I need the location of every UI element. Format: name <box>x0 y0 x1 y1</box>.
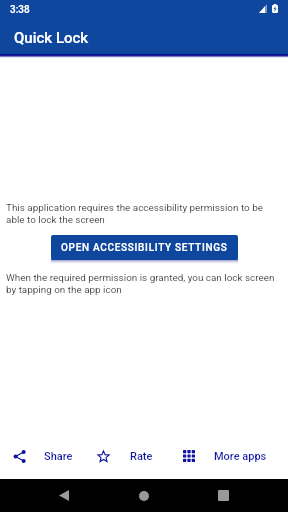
staticText: When the required permission is granted,… <box>6 272 282 296</box>
staticText: OPEN ACCESSIBILITY SETTINGS <box>61 242 228 254</box>
button[interactable]: More apps <box>178 438 273 474</box>
button[interactable]: Rate <box>92 438 159 474</box>
staticText: Share <box>44 450 73 463</box>
other: Home <box>139 491 149 501</box>
other: Back <box>59 490 69 501</box>
button[interactable]: OPEN ACCESSIBILITY SETTINGS <box>51 235 238 260</box>
other: More apps <box>183 450 195 462</box>
button[interactable]: Share <box>8 438 79 474</box>
staticText: More apps <box>214 450 267 463</box>
other: Recents <box>218 490 229 501</box>
other: Share <box>13 450 26 463</box>
staticText: Quick Lock <box>14 29 89 47</box>
staticText: Rate <box>130 450 153 463</box>
other: Rate <box>97 450 110 463</box>
staticText: 3:38 <box>10 4 30 16</box>
staticText: This application requires the accessibil… <box>6 202 270 226</box>
